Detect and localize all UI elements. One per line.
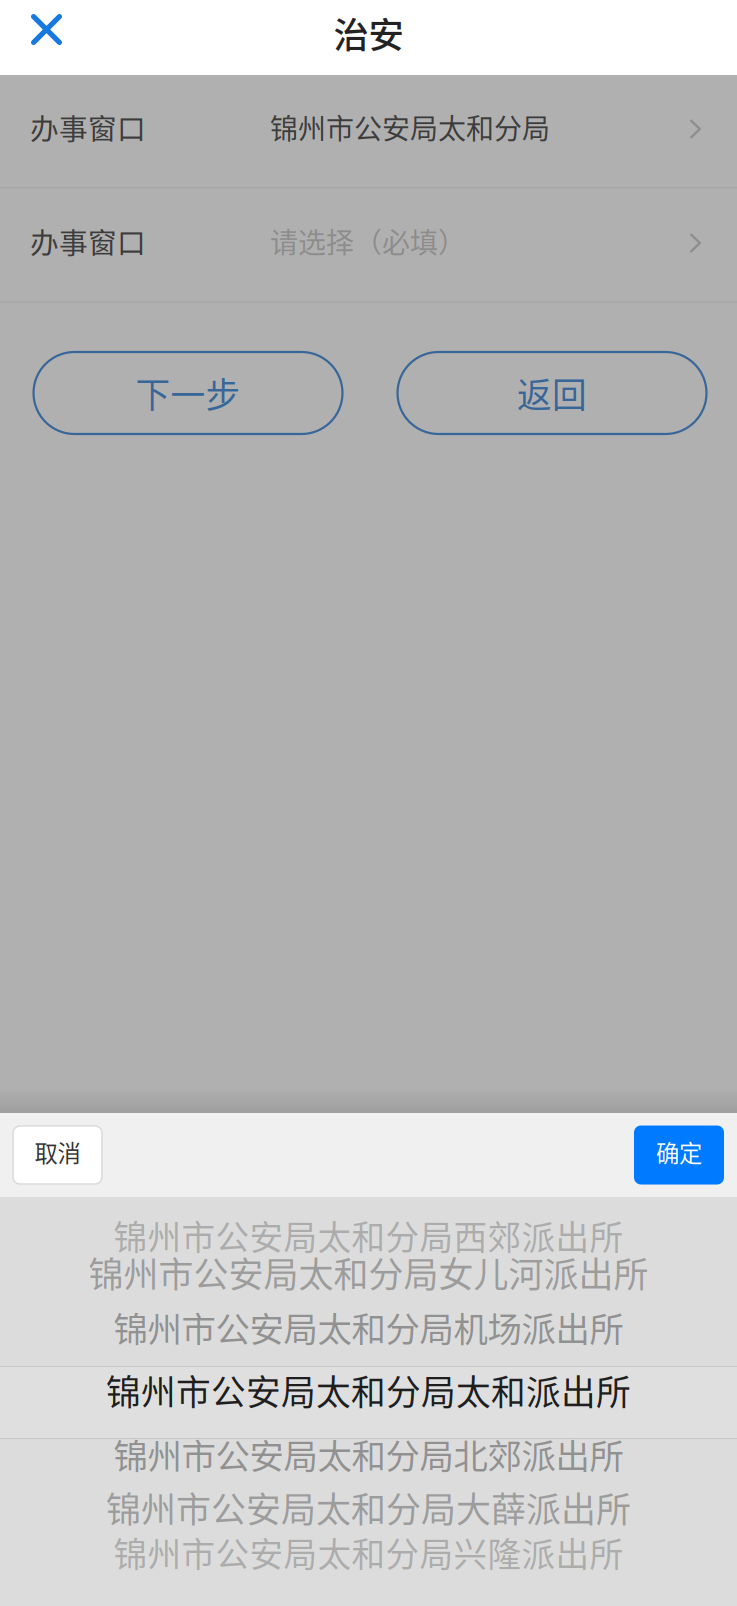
button[interactable]: Close xyxy=(0,0,86,75)
staticText: 治安 xyxy=(333,7,403,58)
staticText: 锦州市公安局太和分局兴隆派出所 xyxy=(113,1528,623,1577)
staticText: 锦州市公安局太和分局机场派出所 xyxy=(113,1302,623,1352)
staticText: 锦州市公安局太和分局北郊派出所 xyxy=(113,1429,623,1479)
staticText: 锦州市公安局太和分局 xyxy=(270,107,550,147)
staticText: 办事窗口 xyxy=(30,220,146,262)
button[interactable]: 返回 xyxy=(397,352,706,434)
button[interactable]: 办事窗口 xyxy=(0,188,737,301)
staticText: 锦州市公安局太和分局太和派出所 xyxy=(106,1365,631,1415)
button[interactable]: 确定 xyxy=(634,1125,724,1184)
staticText: 请选择（必填） xyxy=(270,221,466,261)
staticText: 办事窗口 xyxy=(30,106,146,148)
button[interactable]: 办事窗口 xyxy=(0,75,737,187)
staticText: 锦州市公安局太和分局大薛派出所 xyxy=(106,1482,631,1533)
button[interactable]: 取消 xyxy=(13,1126,102,1184)
staticText: 确定 xyxy=(656,1135,702,1169)
button[interactable]: 下一步 xyxy=(33,352,342,434)
staticText: 取消 xyxy=(34,1135,80,1169)
staticText: 返回 xyxy=(517,368,587,418)
staticText: 下一步 xyxy=(135,368,240,418)
staticText: 锦州市公安局太和分局女儿河派出所 xyxy=(88,1247,648,1298)
staticText: 锦州市公安局太和分局西郊派出所 xyxy=(113,1211,623,1260)
